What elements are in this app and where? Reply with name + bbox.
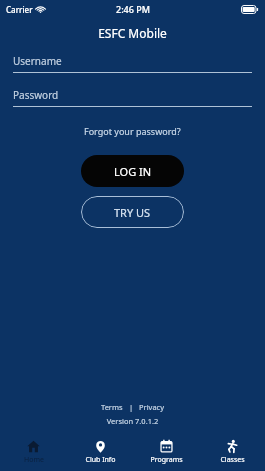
button[interactable]: Privacy [137,401,167,413]
other: Programs [160,440,173,453]
button[interactable]: Home [0,435,67,471]
staticText: Classes [220,455,245,465]
staticText: | [125,402,137,412]
button[interactable]: Classes [199,435,265,471]
button[interactable]: Programs [133,435,199,471]
staticText: Forgot your password? [84,125,181,137]
button[interactable]: TRY US [81,196,184,228]
other: Club Info [94,440,107,453]
staticText: Home [24,455,44,465]
other: Classes [226,440,239,453]
other: Home [27,440,40,453]
staticText: TRY US [114,205,151,220]
button[interactable]: Club Info [67,435,133,471]
staticText: Programs [150,455,183,465]
staticText: Club Info [85,455,116,465]
staticText: Username [13,54,62,68]
staticText: Password [13,88,59,102]
staticText: Terms [101,402,123,412]
staticText: Version 7.0.1.2 [0,416,265,426]
staticText: Carrier [6,4,33,15]
button[interactable]: Terms [99,401,125,413]
staticText: 2:46 PM [116,3,150,15]
staticText: ESFC Mobile [0,25,265,41]
staticText: LOG IN [114,164,152,179]
staticText: Privacy [139,402,165,412]
button[interactable]: Forgot your password? [80,123,185,139]
button[interactable]: LOG IN [81,155,184,187]
